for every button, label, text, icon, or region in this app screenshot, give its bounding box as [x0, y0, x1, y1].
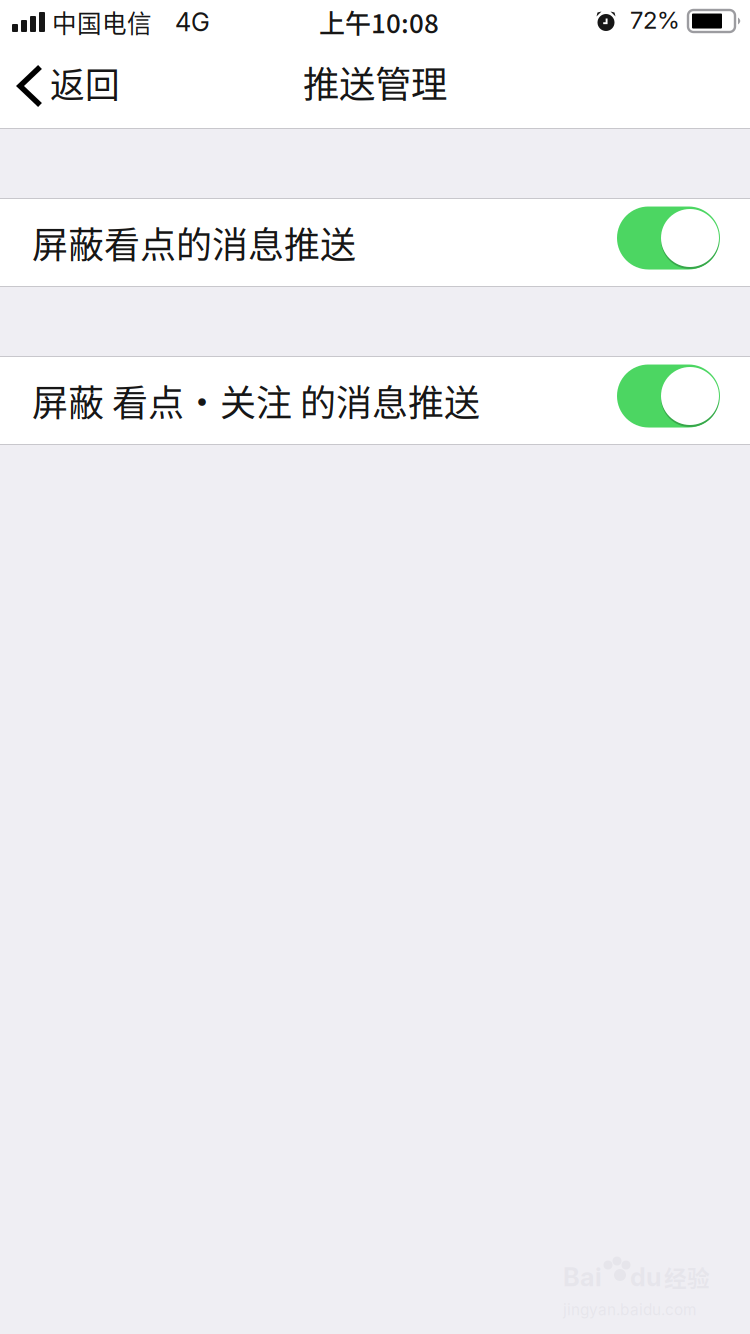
staticText: 推送管理: [303, 56, 447, 108]
staticText: 屏蔽看点的消息推送: [32, 216, 356, 268]
button[interactable]: 屏蔽看点的消息推送: [0, 199, 750, 286]
staticText: 中国电信: [52, 4, 152, 40]
button[interactable]: 返回: [0, 44, 134, 128]
button[interactable]: 屏蔽 看点·关注 的消息推送: [0, 357, 750, 444]
staticText: Bai: [563, 1262, 602, 1292]
staticText: 上午10:08: [319, 3, 439, 41]
staticText: 经验: [664, 1261, 710, 1293]
staticText: du: [630, 1262, 662, 1292]
staticText: 屏蔽 看点·关注 的消息推送: [32, 374, 480, 426]
staticText: 4G: [175, 7, 210, 37]
staticText: 返回: [50, 58, 120, 108]
staticText: 72%: [630, 5, 680, 34]
